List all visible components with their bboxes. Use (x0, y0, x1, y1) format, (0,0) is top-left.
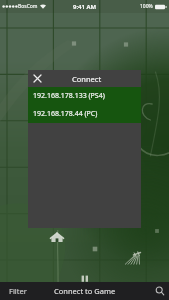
staticText: 9:41 AM (73, 3, 97, 11)
button[interactable]: 192.168.178.44 (PC) (28, 105, 141, 123)
button[interactable]: 192.168.178.133 (PS4) (28, 87, 141, 105)
staticText: 100% (140, 3, 153, 10)
staticText: BosCom (18, 3, 38, 10)
staticText: Filter (9, 286, 27, 296)
button[interactable]: Close (28, 70, 46, 87)
staticText: 192.168.178.133 (PS4) (33, 91, 105, 101)
staticText: 192.168.178.44 (PC) (33, 109, 98, 119)
button[interactable]: Search (151, 282, 169, 300)
button[interactable]: Filter (0, 282, 51, 300)
staticText: Connect to Game (54, 286, 116, 296)
staticText: Connect (72, 74, 102, 84)
